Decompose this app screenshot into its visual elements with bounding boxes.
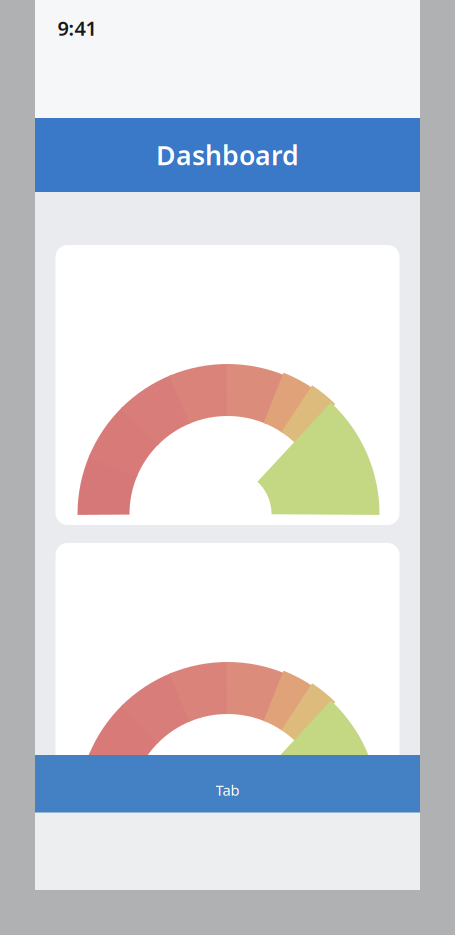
staticText: Tab: [215, 780, 239, 800]
staticText: 9:41: [57, 15, 96, 41]
staticText: Dashboard: [156, 137, 299, 173]
